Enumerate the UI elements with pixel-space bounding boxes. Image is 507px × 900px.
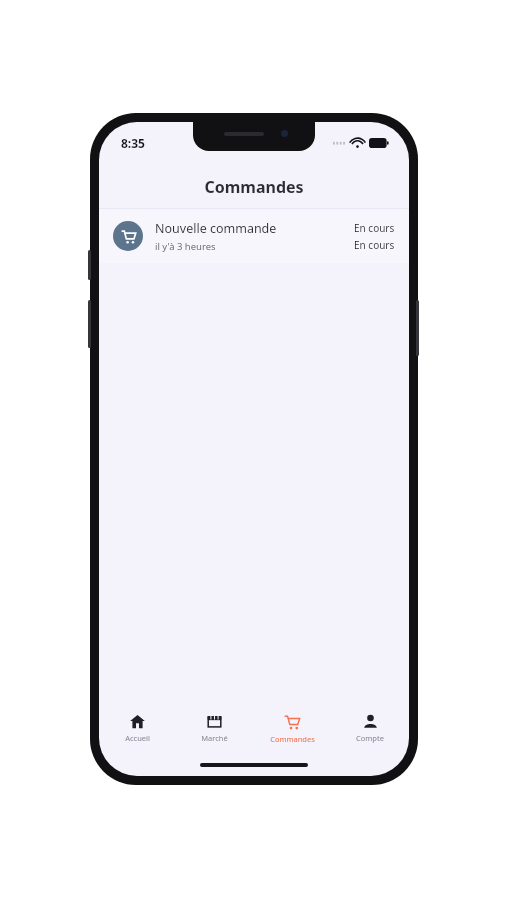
staticText: Nouvelle commande [155,220,277,237]
button[interactable]: Accueil [99,708,176,754]
staticText: Accueil [125,733,150,743]
staticText: 8:35 [121,135,145,151]
button[interactable]: Commandes [253,708,331,754]
button[interactable]: Nouvelle commande [99,209,409,263]
button[interactable]: Compte [331,708,409,754]
button[interactable]: Marché [176,708,253,754]
staticText: En cours [354,221,395,235]
staticText: il y'à 3 heures [155,240,216,253]
staticText: Marché [201,733,228,743]
staticText: En cours [354,238,395,252]
staticText: Compte [356,733,384,743]
staticText: Commandes [204,176,304,198]
staticText: Commandes [270,734,315,744]
